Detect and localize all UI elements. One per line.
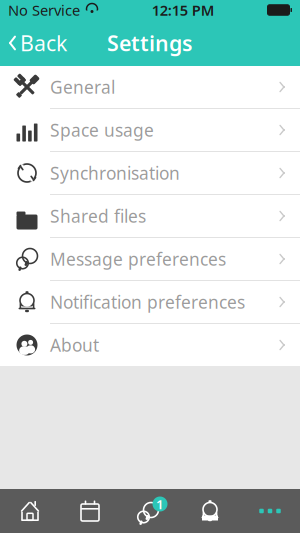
button[interactable]: Notification preferences <box>0 281 300 323</box>
button[interactable]: Home <box>0 489 60 533</box>
button[interactable]: Messages, 1 unread <box>120 489 180 533</box>
button[interactable]: Notifications <box>180 489 240 533</box>
button[interactable]: Synchronisation <box>0 152 300 194</box>
button[interactable]: Calendar <box>60 489 120 533</box>
staticText: Settings <box>107 29 193 57</box>
staticText: Shared files <box>50 204 146 227</box>
button[interactable]: Message preferences <box>0 238 300 280</box>
staticText: 1 <box>156 495 164 513</box>
button[interactable]: Shared files <box>0 195 300 237</box>
staticText: 12:15 PM <box>152 0 215 20</box>
staticText: Notification preferences <box>50 290 245 313</box>
staticText: Back <box>20 29 67 57</box>
button[interactable]: Back <box>0 23 75 63</box>
button[interactable]: About <box>0 324 300 366</box>
button[interactable]: More <box>240 489 300 533</box>
staticText: About <box>50 333 99 356</box>
staticText: Space usage <box>50 118 154 141</box>
staticText: General <box>50 75 115 98</box>
staticText: Synchronisation <box>50 161 180 184</box>
button[interactable]: General <box>0 66 300 108</box>
staticText: Message preferences <box>50 247 226 270</box>
button[interactable]: Space usage <box>0 109 300 151</box>
staticText: No Service <box>8 0 80 20</box>
